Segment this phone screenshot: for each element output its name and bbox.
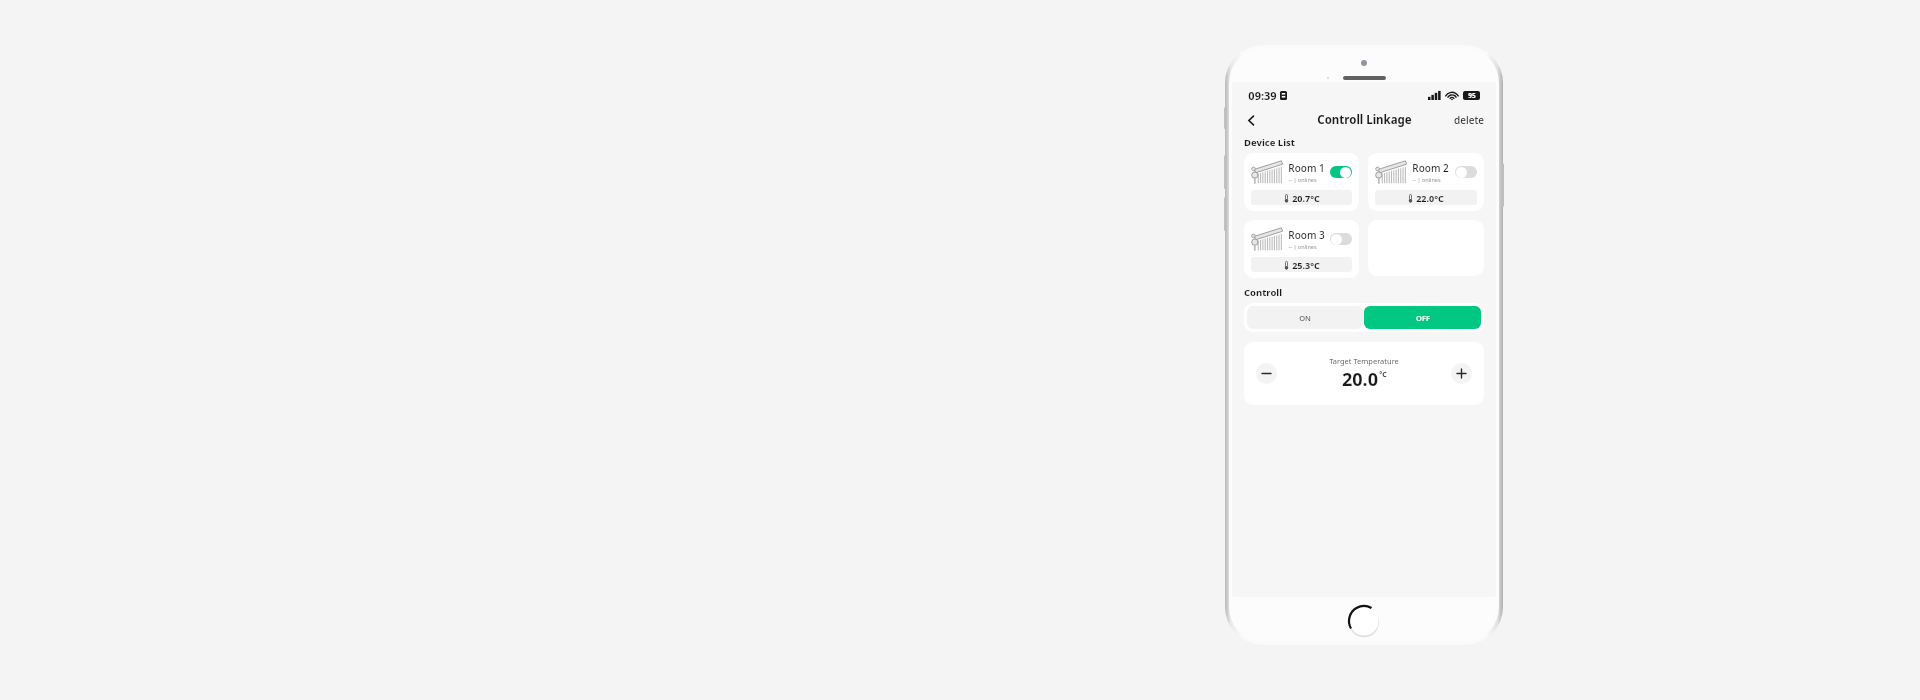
button[interactable]: Room 3 xyxy=(1244,220,1359,278)
staticText: -- | onlines xyxy=(1412,176,1441,183)
staticText: 20.0 xyxy=(1342,367,1378,392)
staticText: Room 1 xyxy=(1288,161,1325,175)
staticText: Controll Linkage xyxy=(1317,112,1412,128)
staticText: Device List xyxy=(1244,136,1295,149)
staticText: 20.7°C xyxy=(1292,192,1320,204)
button[interactable]: OFF xyxy=(1364,306,1481,329)
staticText: 22.0°C xyxy=(1416,192,1444,204)
staticText: Room 3 xyxy=(1288,228,1325,242)
staticText: Target Temperature xyxy=(1329,356,1399,366)
staticText: 09:39 xyxy=(1248,88,1277,103)
staticText: -- | onlines xyxy=(1288,243,1317,250)
staticText: 25.3°C xyxy=(1292,259,1320,271)
staticText: delete xyxy=(1454,113,1484,127)
button[interactable]: Turn on xyxy=(1330,233,1352,245)
button[interactable]: Increase temperature xyxy=(1451,363,1472,384)
button[interactable]: Room 2 xyxy=(1368,153,1484,211)
staticText: Controll xyxy=(1244,286,1282,299)
staticText: OFF xyxy=(1416,313,1430,323)
staticText: Room 2 xyxy=(1412,161,1449,175)
button[interactable]: delete xyxy=(1454,113,1484,127)
button[interactable]: Decrease temperature xyxy=(1256,363,1277,384)
button[interactable]: Back xyxy=(1240,109,1262,131)
staticText: °C xyxy=(1379,370,1387,380)
button[interactable]: Turn on xyxy=(1455,166,1477,178)
staticText: 95 xyxy=(1468,91,1476,100)
button[interactable]: Turn off xyxy=(1330,166,1352,178)
button[interactable]: ON xyxy=(1247,306,1363,329)
button[interactable]: Room 1 xyxy=(1244,153,1359,211)
staticText: -- | onlines xyxy=(1288,176,1317,183)
staticText: ON xyxy=(1299,313,1311,323)
